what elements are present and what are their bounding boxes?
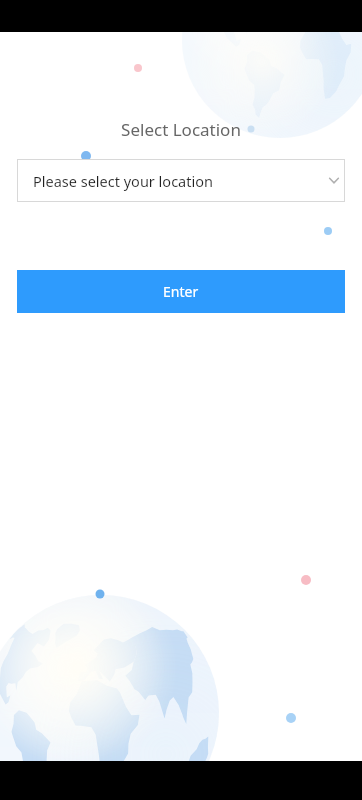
staticText: Please select your location <box>33 171 213 191</box>
other: Expand location list <box>329 177 339 184</box>
button[interactable]: Enter <box>17 270 345 313</box>
staticText: Enter <box>163 282 199 301</box>
button[interactable]: Please select your location <box>17 159 345 202</box>
staticText: Select Location <box>0 118 362 141</box>
